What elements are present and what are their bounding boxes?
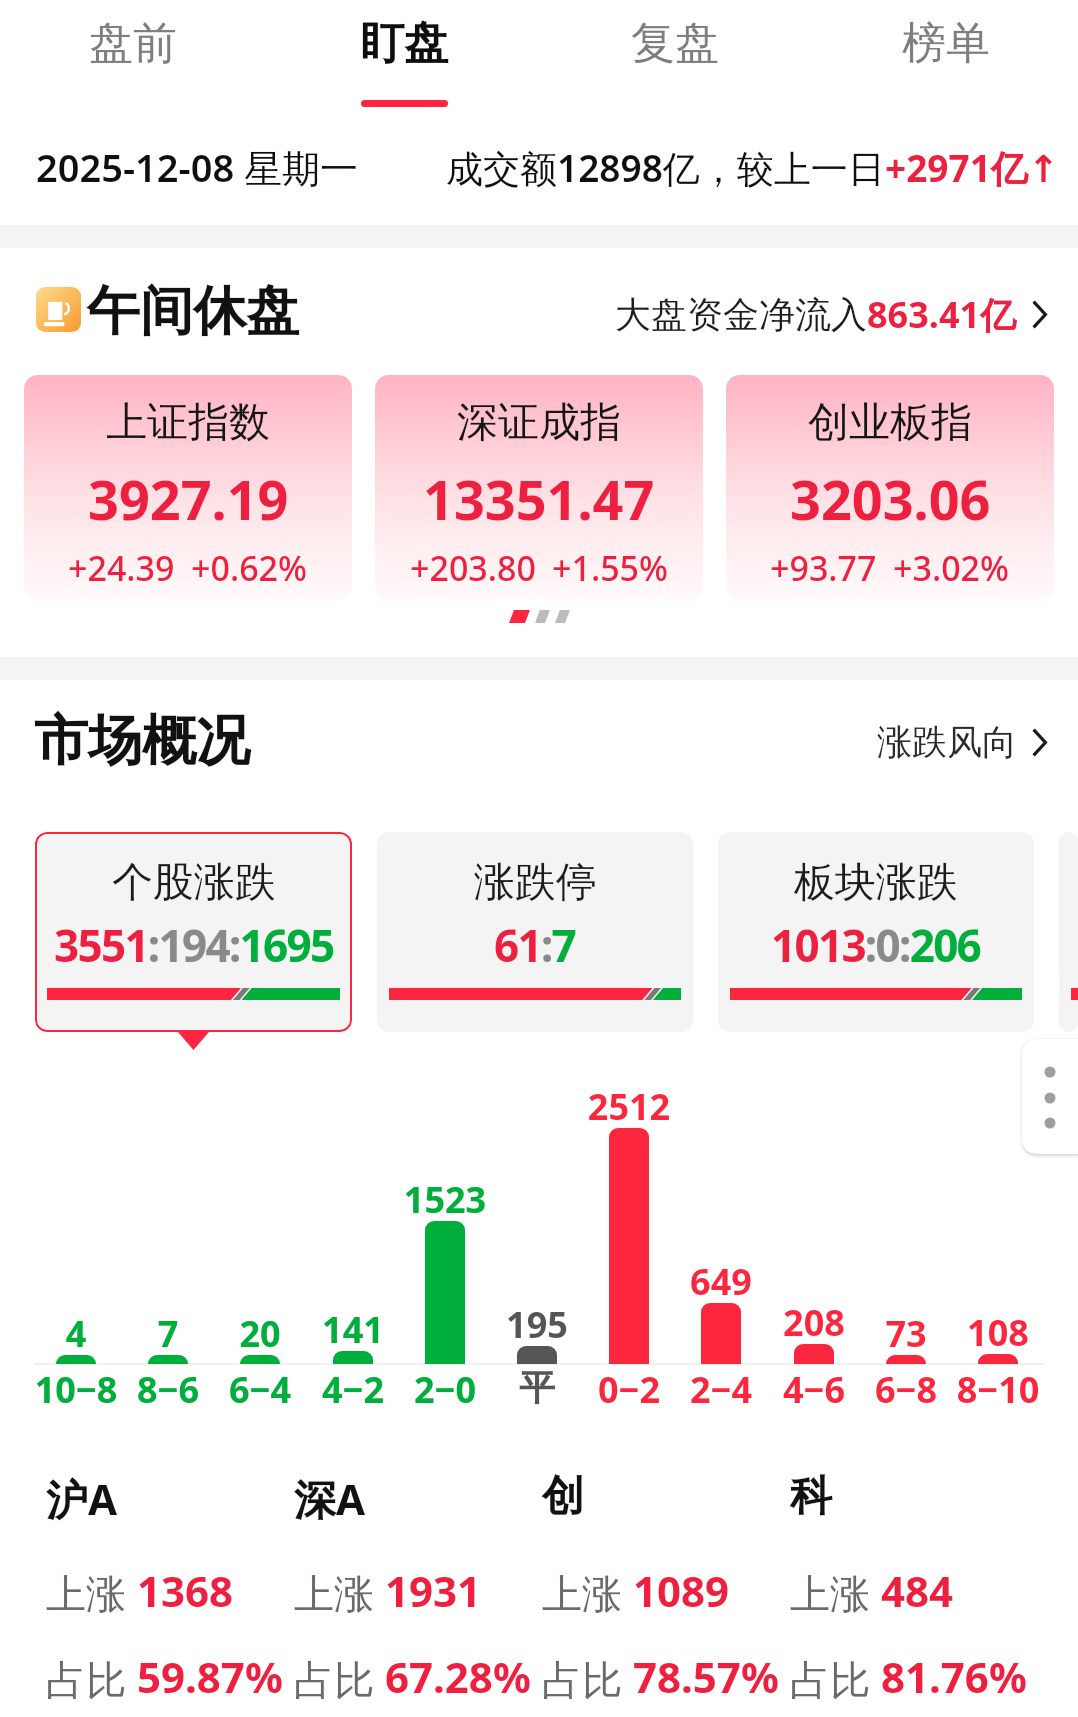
staticText: 2−0 xyxy=(385,1365,505,1414)
staticText: 59.87% xyxy=(137,1648,283,1705)
staticText: 1089 xyxy=(633,1562,730,1619)
staticText: 占比 xyxy=(46,1655,126,1705)
staticText: +93.77 xyxy=(770,545,877,591)
staticText: 上证指数 xyxy=(106,397,270,449)
staticText: 67.28% xyxy=(385,1648,531,1705)
staticText: 个股涨跌 xyxy=(112,857,276,909)
staticText: 7 xyxy=(108,1309,228,1358)
staticText: 10−8 xyxy=(16,1365,136,1414)
button[interactable]: 复盘 xyxy=(589,0,761,107)
staticText: 上涨 xyxy=(46,1569,126,1619)
staticText: 涨跌停 xyxy=(474,857,597,909)
staticText: 大盘资金净流入 xyxy=(615,292,867,337)
staticText: 8−6 xyxy=(108,1365,228,1414)
staticText: 1368 xyxy=(137,1562,234,1619)
staticText: 创 xyxy=(542,1470,584,1523)
staticText: 4−6 xyxy=(754,1365,874,1414)
staticText: 1931 xyxy=(385,1562,482,1619)
staticText: 649 xyxy=(661,1257,781,1306)
staticText: +203.80 xyxy=(410,545,536,591)
staticText: 4 xyxy=(16,1309,136,1358)
button[interactable]: 深证成指 xyxy=(375,375,703,600)
staticText: 1523 xyxy=(385,1175,505,1224)
button[interactable]: More options xyxy=(1022,1039,1078,1154)
button[interactable]: 榜单 xyxy=(860,0,1032,107)
staticText: 板块涨跌 xyxy=(794,857,958,909)
staticText: 占比 xyxy=(542,1655,622,1705)
staticText: 盘前 xyxy=(89,16,177,71)
staticText: 73 xyxy=(846,1309,966,1358)
staticText: 484 xyxy=(881,1562,954,1619)
staticText: 4−2 xyxy=(293,1365,413,1414)
staticText: 科 xyxy=(790,1470,832,1523)
staticText: 2025-12-08 星期一 xyxy=(36,141,359,193)
staticText: 20 xyxy=(200,1309,320,1358)
staticText: 3927.19 xyxy=(88,462,289,536)
staticText: 深A xyxy=(294,1470,366,1527)
staticText: 2512 xyxy=(569,1082,689,1131)
staticText: 208 xyxy=(754,1298,874,1347)
staticText: 61:7 xyxy=(494,915,576,975)
staticText: +1.55% xyxy=(552,545,669,591)
staticText: 平 xyxy=(477,1365,597,1410)
staticText: 午间休盘 xyxy=(87,278,299,345)
staticText: 141 xyxy=(293,1305,413,1354)
button[interactable]: 个股涨跌 xyxy=(35,832,352,1032)
staticText: 81.76% xyxy=(881,1648,1027,1705)
staticText: 市场概况 xyxy=(34,707,250,775)
staticText: +24.39 xyxy=(68,545,175,591)
button[interactable]: 上证指数 xyxy=(24,375,352,600)
staticText: 13351.47 xyxy=(423,462,655,536)
staticText: 涨跌风向 xyxy=(877,720,1017,764)
staticText: 复盘 xyxy=(631,16,719,71)
button[interactable]: 更多指标 xyxy=(1059,832,1078,1032)
staticText: 沪A xyxy=(46,1470,118,1527)
staticText: 占比 xyxy=(294,1655,374,1705)
staticText: 1013:0:206 xyxy=(771,915,981,975)
staticText: 8−10 xyxy=(938,1365,1058,1414)
staticText: 863.41亿 xyxy=(867,290,1017,339)
staticText: 上涨 xyxy=(542,1569,622,1619)
staticText: 108 xyxy=(938,1308,1058,1357)
staticText: 0−2 xyxy=(569,1365,689,1414)
staticText: +0.62% xyxy=(191,545,308,591)
staticText: 3551:194:1695 xyxy=(54,915,334,975)
staticText: 深证成指 xyxy=(457,397,621,449)
staticText: 榜单 xyxy=(902,16,990,71)
staticText: 创业板指 xyxy=(808,397,972,449)
staticText: 盯盘 xyxy=(360,16,448,71)
button[interactable]: 板块涨跌 xyxy=(718,832,1034,1032)
button[interactable]: 盯盘 xyxy=(318,0,490,107)
staticText: 195 xyxy=(477,1300,597,1349)
staticText: 6−4 xyxy=(200,1365,320,1414)
staticText: 78.57% xyxy=(633,1648,779,1705)
button[interactable]: 盘前 xyxy=(47,0,219,107)
staticText: 6−8 xyxy=(846,1365,966,1414)
staticText: 3203.06 xyxy=(790,462,991,536)
staticText: 成交额12898亿，较上一日 xyxy=(446,142,885,193)
staticText: +3.02% xyxy=(893,545,1010,591)
staticText: +2971亿↑ xyxy=(885,142,1059,193)
staticText: 2−4 xyxy=(661,1365,781,1414)
button[interactable]: 涨跌停 xyxy=(377,832,693,1032)
staticText: 上涨 xyxy=(790,1569,870,1619)
button[interactable]: 创业板指 xyxy=(726,375,1054,600)
staticText: 上涨 xyxy=(294,1569,374,1619)
staticText: 占比 xyxy=(790,1655,870,1705)
